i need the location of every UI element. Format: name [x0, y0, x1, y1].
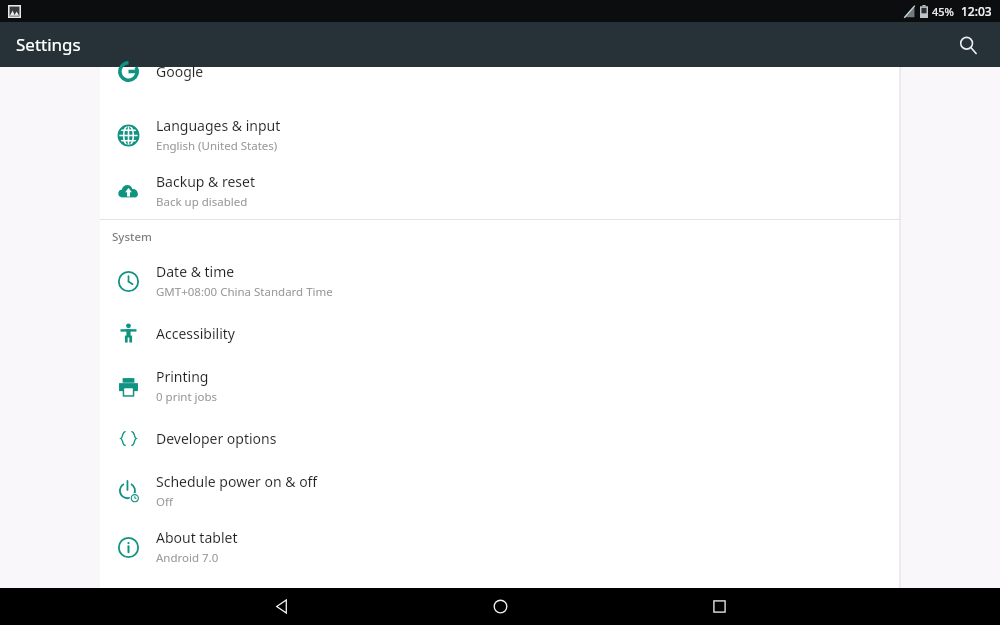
staticText: 12:03 — [961, 3, 992, 19]
button[interactable]: About tablet — [100, 519, 900, 575]
staticText: Languages & input — [156, 116, 281, 135]
staticText: English (United States) — [156, 138, 278, 154]
button[interactable]: Recent apps — [695, 588, 743, 625]
staticText: Developer options — [156, 429, 277, 448]
button[interactable]: Back — [257, 588, 305, 625]
staticText: Accessibility — [156, 324, 235, 343]
button[interactable]: Developer options — [100, 414, 900, 463]
staticText: About tablet — [156, 528, 238, 547]
staticText: Backup & reset — [156, 172, 255, 191]
staticText: GMT+08:00 China Standard Time — [156, 284, 333, 300]
staticText: 0 print jobs — [156, 389, 218, 405]
staticText: Settings — [16, 33, 81, 56]
staticText: Google — [156, 62, 204, 81]
button[interactable]: Accessibility — [100, 309, 900, 358]
button[interactable]: Languages & input — [100, 107, 900, 163]
staticText: Printing — [156, 367, 209, 386]
button[interactable]: Printing — [100, 358, 900, 414]
button[interactable]: Home — [476, 588, 524, 625]
button[interactable]: Google — [100, 67, 900, 107]
staticText: 45% — [932, 4, 954, 19]
button[interactable]: Search — [950, 27, 986, 63]
staticText: Date & time — [156, 262, 235, 281]
staticText: System — [112, 229, 152, 245]
staticText: Schedule power on & off — [156, 472, 318, 491]
staticText: Android 7.0 — [156, 550, 219, 566]
button[interactable]: Backup & reset — [100, 163, 900, 219]
staticText: Off — [156, 494, 173, 510]
button[interactable]: Schedule power on & off — [100, 463, 900, 519]
button[interactable]: Date & time — [100, 253, 900, 309]
staticText: Back up disabled — [156, 194, 248, 210]
